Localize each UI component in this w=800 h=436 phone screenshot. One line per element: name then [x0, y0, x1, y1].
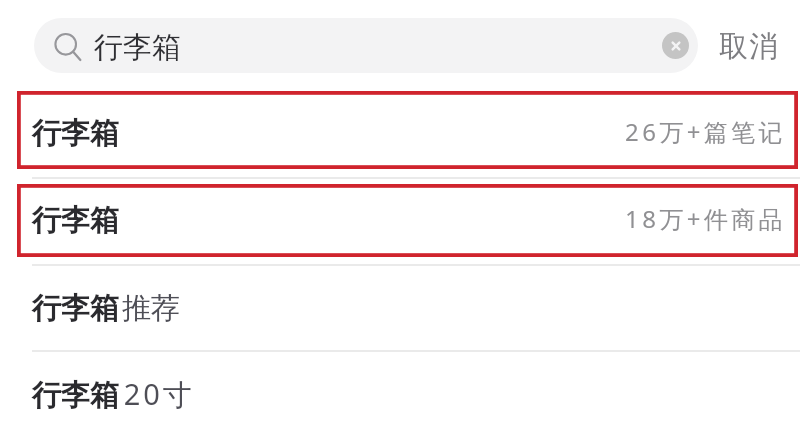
staticText: 行李箱 推荐 [32, 287, 180, 327]
staticText: 取消 [719, 28, 780, 65]
staticText: 行李箱 [94, 29, 181, 66]
button[interactable]: Clear search text [662, 32, 689, 59]
staticText: 26万+篇笔记 [625, 115, 786, 148]
button[interactable]: 取消 [708, 18, 788, 73]
button[interactable]: 行李箱 [0, 90, 800, 176]
staticText: 行李箱 [32, 202, 119, 239]
button[interactable]: 行李箱 2 0 寸 [0, 351, 800, 436]
staticText: 行李箱 2 0 寸 [32, 374, 192, 414]
button[interactable]: 行李箱 推荐 [0, 264, 800, 350]
button[interactable]: 行李箱 [34, 18, 698, 73]
staticText: 行李箱 [32, 115, 119, 152]
staticText: 18万+件商品 [625, 202, 786, 235]
button[interactable]: 行李箱 [0, 177, 800, 263]
